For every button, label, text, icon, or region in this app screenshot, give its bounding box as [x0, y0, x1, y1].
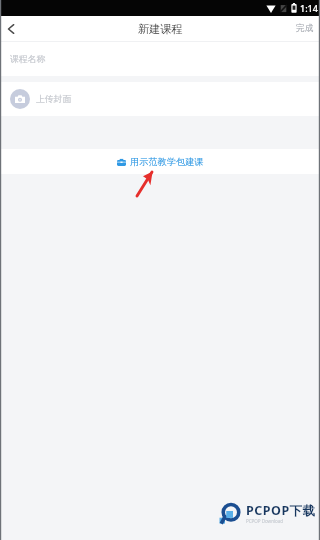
button[interactable]: Back: [0, 16, 21, 41]
staticText: PCPOP下载: [246, 502, 316, 519]
button[interactable]: 用示范教学包建课: [0, 149, 320, 174]
button[interactable]: 完成: [286, 16, 320, 41]
staticText: 课程名称: [10, 54, 46, 65]
staticText: 完成: [296, 23, 314, 34]
staticText: 用示范教学包建课: [130, 156, 204, 168]
button[interactable]: 上传封面: [0, 82, 320, 116]
staticText: 1:14: [300, 2, 318, 14]
staticText: 上传封面: [36, 94, 72, 105]
button[interactable]: 课程名称: [0, 42, 320, 76]
staticText: PCPOP Download: [246, 518, 284, 524]
staticText: 新建课程: [138, 22, 183, 36]
